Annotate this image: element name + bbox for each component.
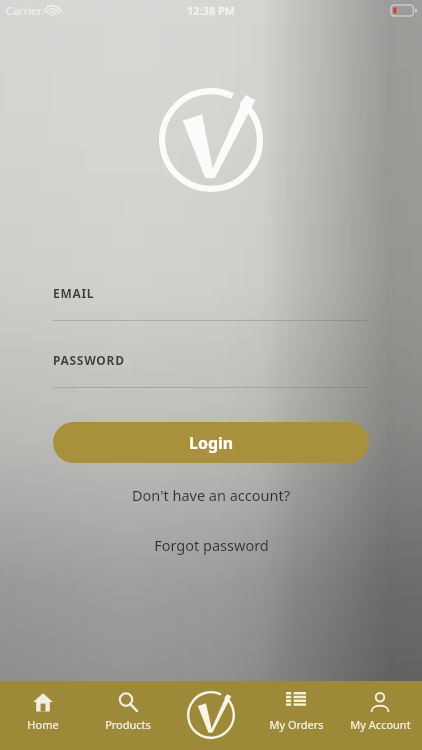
button[interactable]: Products: [85, 681, 170, 732]
staticText: Don't have an account?: [132, 485, 290, 505]
button[interactable]: My Account: [338, 681, 422, 732]
staticText: 12:38 PM: [187, 3, 236, 18]
button[interactable]: Don't have an account?: [0, 485, 422, 505]
staticText: My Account: [350, 717, 411, 732]
staticText: Products: [105, 717, 151, 732]
staticText: Forgot password: [154, 535, 269, 555]
button[interactable]: PASSWORD: [53, 352, 369, 388]
button[interactable]: My Orders: [254, 681, 338, 732]
button[interactable]: Login: [53, 422, 369, 463]
staticText: Home: [27, 717, 59, 732]
staticText: PASSWORD: [53, 352, 125, 368]
staticText: Login: [189, 432, 234, 454]
button[interactable]: Home: [0, 681, 85, 732]
staticText: My Orders: [269, 717, 324, 732]
button[interactable]: EMAIL: [53, 285, 369, 321]
button[interactable]: Forgot password: [0, 535, 422, 555]
button[interactable]: Home logo: [186, 690, 236, 740]
staticText: EMAIL: [53, 285, 95, 301]
staticText: Carrier: [6, 3, 42, 18]
